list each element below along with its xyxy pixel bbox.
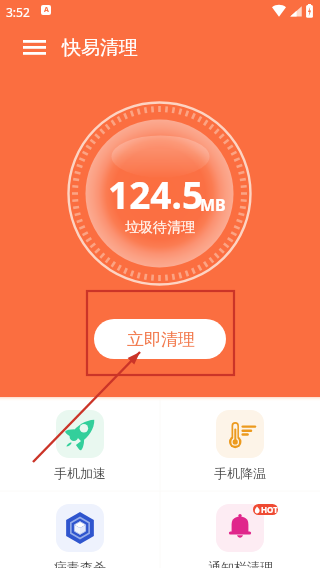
staticText: 通知栏清理 [208, 559, 273, 568]
staticText: 手机加速 [54, 465, 106, 481]
button[interactable]: 手机加速 [0, 397, 160, 491]
staticText: A [44, 5, 49, 15]
staticText: 垃圾待清理 [125, 219, 195, 237]
button[interactable]: Menu [11, 31, 58, 63]
staticText: 病毒查杀 [54, 559, 106, 568]
button[interactable]: HOT [160, 491, 320, 568]
staticText: HOT [261, 504, 278, 515]
button[interactable]: 手机降温 [160, 397, 320, 491]
button[interactable]: 病毒查杀 [0, 491, 160, 568]
staticText: 立即清理 [127, 329, 195, 350]
staticText: 3:52 [6, 4, 30, 20]
staticText: 手机降温 [214, 465, 266, 481]
staticText: 快易清理 [62, 36, 138, 60]
staticText: 124.5 [108, 169, 204, 219]
staticText: MB [200, 194, 226, 216]
button[interactable]: 立即清理 [94, 319, 226, 359]
